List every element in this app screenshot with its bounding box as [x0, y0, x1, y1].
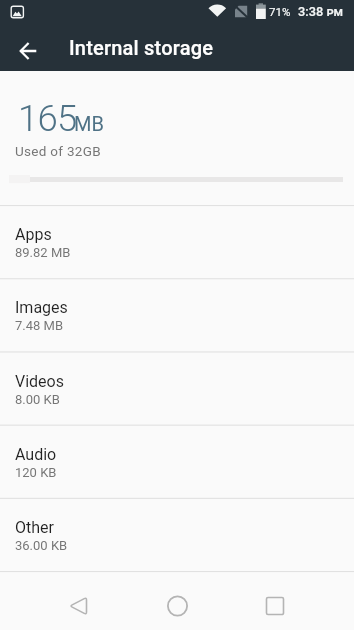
staticText: Used of 32GB [15, 143, 101, 159]
staticText: Audio [15, 445, 57, 464]
staticText: 36.00 KB [15, 538, 68, 553]
staticText: 71% [269, 5, 291, 18]
staticText: Apps [15, 225, 52, 244]
staticText: Images [15, 298, 68, 317]
staticText: 3:38 ᴘᴍ [298, 4, 343, 19]
staticText: Other [15, 518, 54, 537]
button[interactable]: Videos [0, 353, 354, 425]
staticText: 165 [18, 97, 77, 140]
button[interactable] [4, 27, 52, 75]
staticText: MB [74, 112, 104, 135]
staticText: 8.00 KB [15, 392, 60, 407]
button[interactable] [251, 582, 299, 630]
button[interactable]: Audio [0, 426, 354, 498]
button[interactable]: Apps [0, 206, 354, 278]
staticText: Videos [15, 372, 64, 391]
button[interactable] [54, 582, 102, 630]
staticText: 120 KB [15, 465, 57, 480]
staticText: 89.82 MB [15, 245, 71, 260]
button[interactable] [153, 582, 201, 630]
button[interactable]: Other [0, 499, 354, 571]
staticText: Internal storage [69, 36, 214, 59]
staticText: 7.48 MB [15, 318, 64, 333]
button[interactable]: Images [0, 279, 354, 351]
